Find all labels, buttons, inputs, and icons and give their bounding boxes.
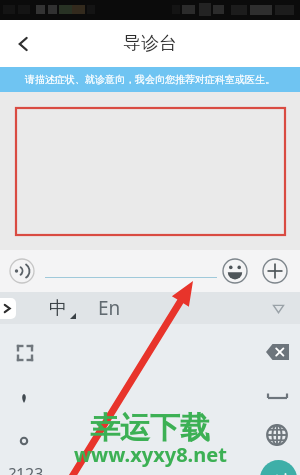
staticText: 请描述症状、就诊意向，我会向您推荐对症科室或医生。 bbox=[25, 73, 275, 86]
button[interactable]: Fullscreen bbox=[12, 340, 38, 366]
button[interactable]: Change language bbox=[264, 423, 290, 447]
button[interactable]: More options bbox=[262, 258, 288, 284]
staticText: En bbox=[98, 295, 121, 321]
button[interactable]: Expand toolbar bbox=[0, 298, 16, 319]
button[interactable]: Back bbox=[8, 29, 38, 59]
button[interactable]: Emoji bbox=[222, 258, 248, 284]
button[interactable]: Comma bbox=[12, 386, 36, 410]
button[interactable]: En bbox=[98, 293, 132, 323]
button[interactable]: Space bbox=[264, 382, 290, 406]
staticText: 导诊台 bbox=[123, 32, 177, 55]
staticText: www.xyxy8.net bbox=[74, 441, 227, 468]
staticText: 中 bbox=[49, 297, 67, 320]
button[interactable]: Period bbox=[12, 429, 36, 453]
staticText: ?123 bbox=[9, 463, 44, 475]
button[interactable]: Enter bbox=[260, 460, 297, 475]
button[interactable]: Backspace bbox=[264, 340, 290, 364]
button[interactable]: Hide keyboard bbox=[268, 298, 288, 318]
staticText: 幸运下载 bbox=[90, 409, 210, 447]
button[interactable]: Voice input bbox=[9, 258, 35, 284]
button[interactable]: ?123 bbox=[4, 460, 48, 475]
button[interactable]: 中 bbox=[42, 293, 78, 323]
